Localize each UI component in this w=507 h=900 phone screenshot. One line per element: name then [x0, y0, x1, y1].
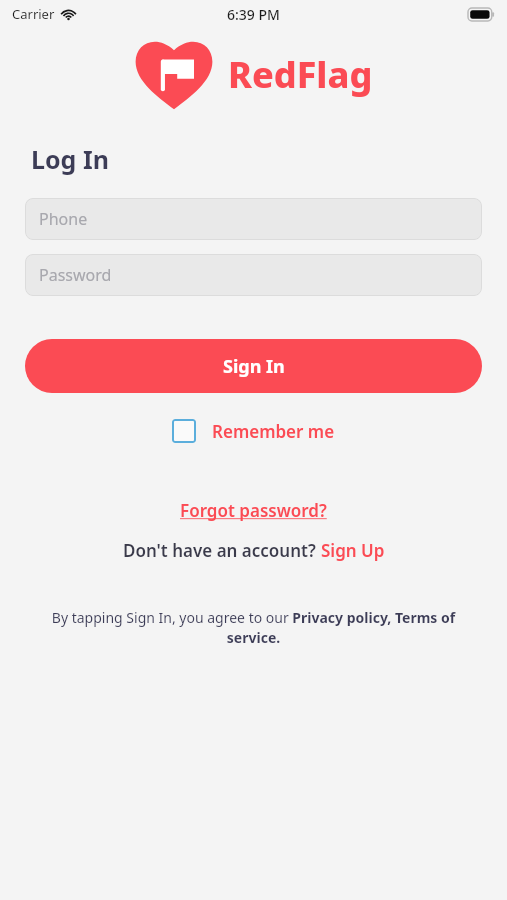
button[interactable]: Phone: [25, 198, 482, 240]
staticText: RedFlag: [228, 50, 373, 99]
other: Remember me checkbox: [172, 419, 196, 443]
button[interactable]: Sign Up: [321, 539, 385, 562]
staticText: 6:39 PM: [227, 5, 280, 24]
button[interactable]: Password: [25, 254, 482, 296]
staticText: By tapping Sign In, you agree to our Pri…: [25, 608, 482, 647]
button[interactable]: Forgot password?: [176, 495, 331, 526]
staticText: Don't have an account?: [123, 539, 321, 562]
button[interactable]: Sign In: [25, 339, 482, 393]
staticText: Sign In: [223, 354, 285, 379]
staticText: Sign Up: [321, 539, 385, 562]
staticText: Remember me: [212, 420, 335, 443]
staticText: Log In: [31, 142, 109, 176]
button[interactable]: Remember me checkbox: [168, 415, 339, 447]
staticText: Password: [39, 264, 112, 286]
button[interactable]: By tapping Sign In, you agree to our Pri…: [25, 608, 482, 647]
staticText: Phone: [39, 208, 88, 230]
staticText: Carrier: [12, 5, 55, 23]
staticText: Forgot password?: [180, 499, 327, 522]
